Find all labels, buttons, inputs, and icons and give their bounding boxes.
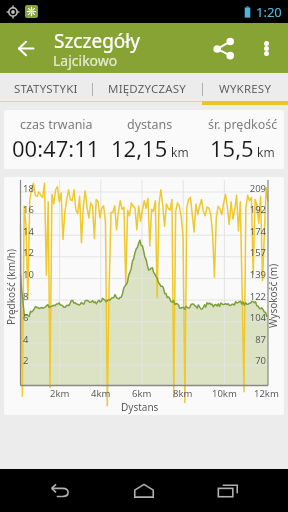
staticText: 122 [249, 290, 266, 303]
staticText: 18 [23, 182, 34, 195]
staticText: km [257, 144, 275, 160]
staticText: 209 [249, 182, 266, 195]
staticText: WYKRESY [219, 81, 272, 97]
staticText: Dystans [121, 400, 159, 414]
button[interactable]: Recent apps [204, 469, 252, 512]
staticText: 6 [23, 311, 29, 324]
staticText: Lajcikowo [53, 51, 118, 70]
staticText: 2 [23, 354, 29, 367]
staticText: czas trwania [20, 116, 93, 133]
staticText: śr. prędkość [208, 116, 278, 133]
staticText: 87 [255, 333, 266, 346]
staticText: 192 [249, 203, 266, 216]
staticText: 70 [255, 354, 266, 367]
staticText: 00:47:11 [12, 133, 100, 163]
staticText: 15,5 [210, 133, 254, 163]
staticText: 10 [23, 268, 34, 281]
staticText: STATYSTYKI [14, 81, 78, 97]
button[interactable]: STATYSTYKI [0, 73, 92, 105]
staticText: 104 [249, 311, 266, 324]
staticText: km [171, 144, 189, 160]
button[interactable]: WYKRESY [202, 73, 288, 105]
staticText: Prędkość (km/h) [4, 249, 18, 325]
staticText: 2km [50, 387, 70, 400]
staticText: Szczegóły [54, 28, 140, 54]
staticText: 10km [212, 387, 237, 400]
staticText: 174 [249, 225, 266, 238]
button[interactable]: Home [120, 469, 168, 512]
staticText: dystans [127, 116, 173, 133]
staticText: Wysokość (m) [266, 263, 280, 328]
staticText: 8km [173, 387, 193, 400]
staticText: 1:20 [256, 3, 282, 21]
staticText: 8 [23, 290, 29, 303]
button[interactable]: More options [248, 30, 284, 66]
button[interactable]: Back [36, 469, 84, 512]
button[interactable]: Share [202, 27, 244, 69]
staticText: 16 [23, 203, 34, 216]
staticText: 12km [254, 387, 279, 400]
button[interactable]: Back [5, 28, 45, 68]
staticText: 12 [23, 246, 34, 259]
staticText: 4 [23, 333, 29, 346]
staticText: MIĘDZYCZASY [108, 81, 187, 97]
staticText: 139 [249, 268, 266, 281]
staticText: 4km [91, 387, 111, 400]
staticText: 6km [132, 387, 152, 400]
staticText: 157 [249, 246, 266, 259]
staticText: 14 [23, 225, 34, 238]
staticText: 12,15 [111, 133, 168, 163]
button[interactable]: MIĘDZYCZASY [92, 73, 202, 105]
